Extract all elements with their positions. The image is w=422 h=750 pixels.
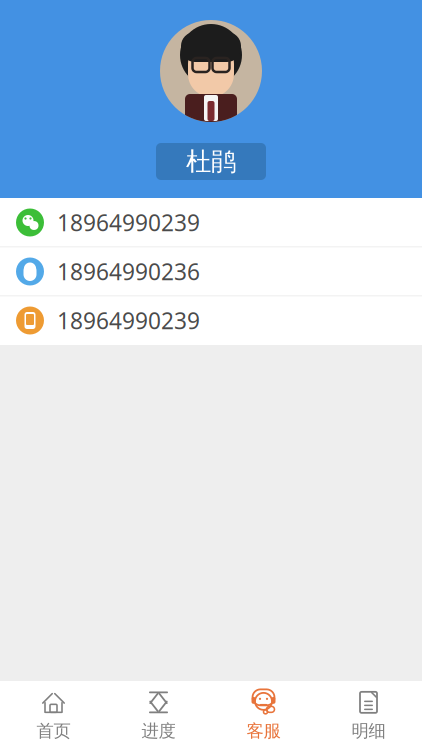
- staticText: 明细: [351, 720, 385, 742]
- staticText: 18964990239: [57, 207, 200, 237]
- staticText: 首页: [36, 720, 70, 742]
- staticText: 进度: [141, 720, 175, 742]
- button[interactable]: 进度: [106, 681, 211, 750]
- button[interactable]: 18964990239: [0, 198, 422, 246]
- button[interactable]: 首页: [1, 681, 106, 750]
- button[interactable]: 18964990239: [0, 296, 422, 344]
- button[interactable]: 明细: [316, 681, 421, 750]
- staticText: 杜鹃: [186, 146, 236, 177]
- button[interactable]: 杜鹃: [156, 143, 266, 180]
- staticText: 客服: [246, 720, 280, 742]
- button[interactable]: 客服: [211, 681, 316, 750]
- button[interactable]: 18964990236: [0, 247, 422, 295]
- staticText: 18964990239: [57, 305, 200, 335]
- staticText: 18964990236: [57, 256, 200, 286]
